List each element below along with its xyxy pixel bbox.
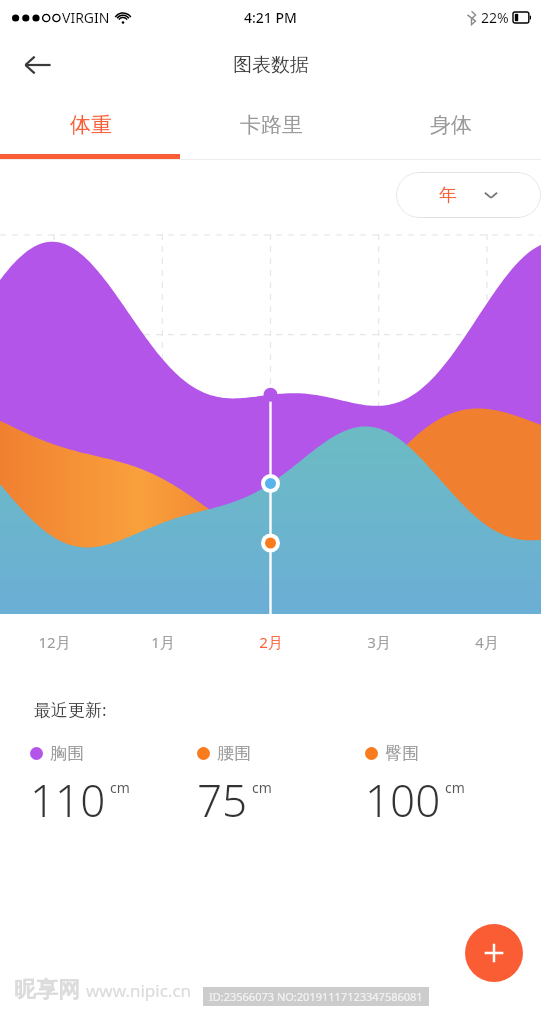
staticText: 腰围: [217, 743, 251, 764]
staticText: 100: [365, 770, 441, 830]
button[interactable]: 臀围: [365, 743, 533, 830]
button[interactable]: Add: [465, 924, 523, 982]
staticText: cm: [252, 778, 272, 797]
staticText: 110: [30, 770, 106, 830]
staticText: 胸围: [50, 743, 84, 764]
staticText: 图表数据: [233, 53, 309, 77]
staticText: 1月: [151, 632, 175, 652]
staticText: 最近更新:: [34, 698, 107, 721]
button[interactable]: 体重: [0, 96, 181, 154]
staticText: 3月: [367, 632, 391, 652]
staticText: 臀围: [385, 743, 419, 764]
staticText: cm: [110, 778, 130, 797]
staticText: 身体: [430, 112, 472, 138]
staticText: 75: [197, 770, 248, 830]
staticText: 4:21 PM: [244, 8, 297, 27]
staticText: ID:23566073 NO:20191117123347586081: [209, 989, 423, 1004]
staticText: 年: [439, 184, 457, 207]
button[interactable]: 年: [396, 172, 541, 218]
staticText: 22%: [481, 8, 509, 27]
button[interactable]: 胸围: [30, 743, 197, 830]
staticText: VIRGIN: [62, 8, 110, 27]
button[interactable]: Back: [14, 41, 62, 89]
staticText: www.nipic.cn: [86, 979, 192, 1002]
staticText: 卡路里: [240, 112, 303, 138]
staticText: cm: [445, 778, 465, 797]
staticText: 体重: [70, 112, 112, 138]
staticText: 2月: [259, 632, 283, 652]
staticText: 昵享网: [14, 976, 80, 1004]
button[interactable]: 腰围: [197, 743, 365, 830]
button[interactable]: 身体: [361, 96, 541, 154]
staticText: 12月: [38, 632, 71, 652]
staticText: 4月: [475, 632, 499, 652]
button[interactable]: 卡路里: [181, 96, 361, 154]
